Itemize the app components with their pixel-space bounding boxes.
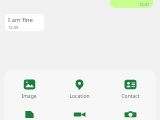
staticText: 12:09: [8, 25, 19, 30]
button[interactable]: Location: [54, 77, 105, 101]
button[interactable]: Camera: [105, 109, 156, 120]
button[interactable]: 12:07: [110, 0, 153, 8]
other: Image: [23, 78, 36, 91]
button[interactable]: Video: [54, 109, 105, 120]
button[interactable]: Document: [4, 109, 54, 120]
staticText: Location: [69, 93, 90, 100]
button[interactable]: Image: [4, 77, 54, 101]
staticText: Image: [21, 93, 37, 100]
staticText: 12:07: [139, 2, 150, 7]
other: Document: [23, 110, 36, 119]
staticText: I am fine: [8, 16, 33, 24]
other: Camera: [124, 110, 137, 119]
other: Video: [73, 110, 86, 119]
other: Location: [73, 78, 86, 91]
button[interactable]: Contact: [105, 77, 156, 101]
other: Contact: [124, 78, 137, 91]
button[interactable]: I am fine: [5, 14, 44, 31]
staticText: Contact: [121, 93, 140, 100]
